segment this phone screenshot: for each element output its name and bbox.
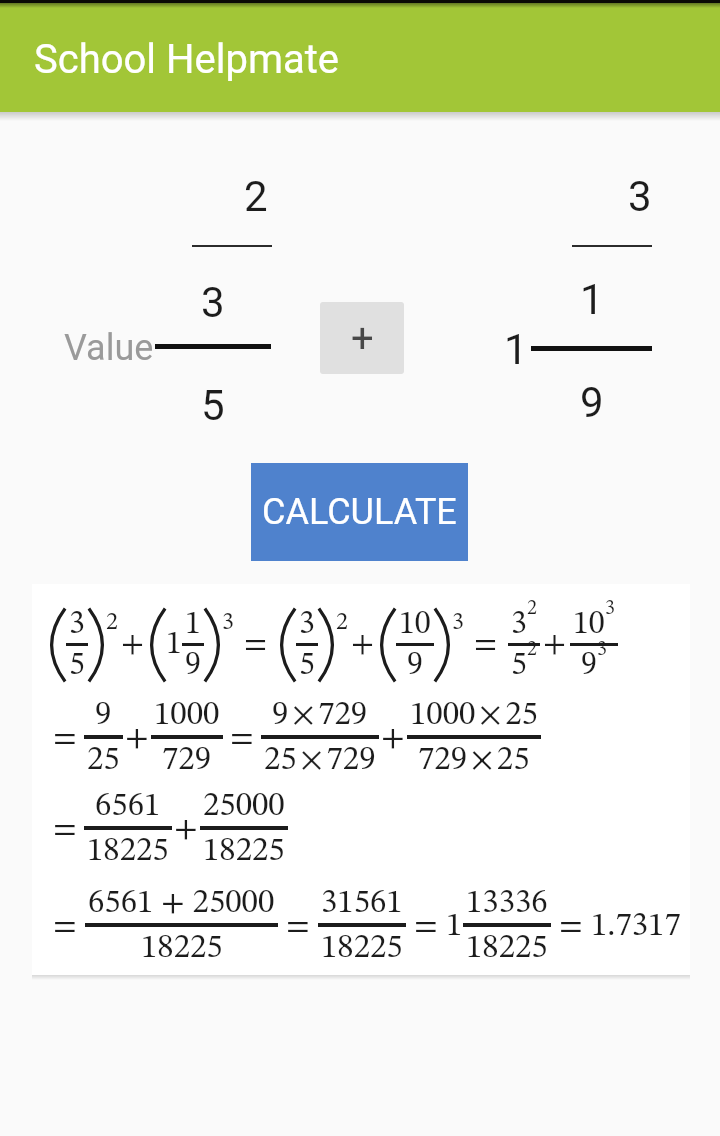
staticText: 2 [336, 611, 348, 635]
staticText: 25000 [203, 790, 285, 823]
staticText: Value [64, 327, 154, 369]
button[interactable]: + [320, 302, 404, 374]
staticText: 2 [527, 640, 537, 660]
staticText: 5 [511, 650, 527, 682]
button[interactable]: 3 [155, 276, 271, 328]
staticText: 3 [511, 609, 527, 641]
button[interactable]: 1 [468, 323, 528, 375]
staticText: = [53, 722, 77, 755]
staticText: + [543, 629, 567, 661]
staticText: 13336 [466, 887, 548, 920]
staticText: School Helpmate [34, 36, 340, 83]
staticText: 1 [166, 629, 182, 661]
staticText: = [286, 910, 310, 943]
staticText: 9 × 729 [272, 699, 368, 732]
staticText: 3 [628, 172, 652, 221]
staticText: 1000 [154, 699, 220, 732]
staticText: 5 [299, 650, 315, 682]
button[interactable]: Value [40, 322, 154, 374]
staticText: 1 [185, 609, 201, 641]
staticText: 9 [407, 650, 423, 682]
staticText: 1 [504, 325, 528, 374]
staticText: 1.7317 [591, 910, 681, 943]
staticText: = [53, 910, 77, 943]
staticText: 5 [201, 381, 225, 430]
staticText: 3 [597, 640, 607, 660]
staticText: + [381, 722, 405, 755]
staticText: + [174, 813, 198, 846]
staticText: 729 [162, 744, 212, 777]
button[interactable]: 9 [531, 376, 652, 428]
staticText: = [244, 629, 268, 661]
staticText: + [351, 315, 374, 362]
button[interactable]: 3 [572, 170, 652, 222]
staticText: 3 [605, 599, 615, 619]
button[interactable]: 2 [192, 170, 268, 222]
staticText: 3 [222, 611, 234, 635]
staticText: 31561 [321, 887, 403, 920]
staticText: 3 [69, 609, 85, 641]
staticText: 2 [244, 172, 268, 221]
staticText: 18225 [466, 932, 548, 965]
staticText: 18225 [203, 835, 285, 868]
button[interactable]: CALCULATE [251, 463, 468, 561]
staticText: 10 [573, 609, 605, 641]
staticText: 18225 [141, 932, 223, 965]
staticText: CALCULATE [262, 491, 457, 533]
staticText: 729 × 25 [418, 744, 530, 777]
staticText: 10 [399, 609, 431, 641]
staticText: 25 [87, 744, 120, 777]
staticText: 6561 [95, 790, 161, 823]
button[interactable]: 5 [155, 379, 271, 431]
staticText: = [414, 910, 438, 943]
staticText: = [230, 722, 254, 755]
staticText: = [474, 629, 498, 661]
button[interactable]: 1 [531, 273, 652, 325]
staticText: 9 [580, 378, 604, 427]
staticText: 6561 + 25000 [88, 887, 275, 920]
staticText: = [559, 910, 583, 943]
staticText: 1000 × 25 [410, 699, 538, 732]
staticText: + [121, 629, 145, 661]
staticText: + [125, 722, 149, 755]
staticText: 9 [95, 699, 112, 732]
staticText: 5 [69, 650, 85, 682]
staticText: 2 [527, 599, 537, 619]
staticText: 1 [580, 275, 604, 324]
staticText: 3 [299, 609, 315, 641]
staticText: + [351, 629, 375, 661]
staticText: 3 [201, 278, 225, 327]
staticText: 18225 [87, 835, 169, 868]
staticText: 3 [452, 611, 464, 635]
staticText: = [53, 813, 77, 846]
staticText: 25 × 729 [264, 744, 376, 777]
staticText: 18225 [321, 932, 403, 965]
staticText: 9 [185, 650, 201, 682]
staticText: 9 [581, 650, 597, 682]
staticText: 1 [446, 910, 463, 943]
staticText: 2 [106, 611, 118, 635]
